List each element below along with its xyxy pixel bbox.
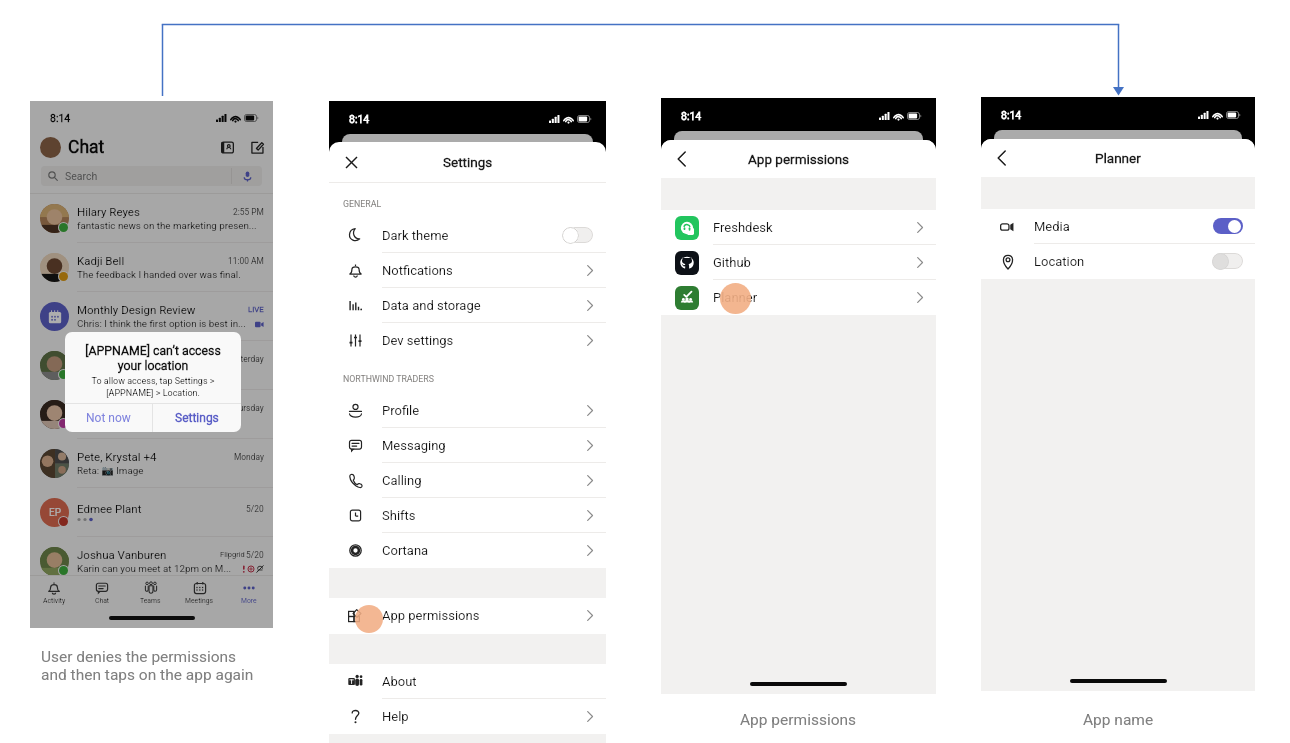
button[interactable]: Kadji Bell (30, 243, 273, 291)
staticText: Joshua Vanburen (77, 548, 167, 561)
button[interactable]: Joshua Vanburen (30, 537, 273, 585)
staticText: [APPNAME] can’t access your location (85, 344, 221, 373)
button[interactable]: Activity (30, 576, 78, 609)
button[interactable]: Notfications (329, 253, 606, 288)
button[interactable]: Calling (329, 463, 606, 498)
button[interactable]: Messaging (329, 428, 606, 463)
staticText: Profile (382, 403, 420, 418)
button[interactable]: Planner (661, 280, 936, 315)
staticText: Dev settings (382, 333, 454, 348)
button[interactable]: Search (41, 166, 262, 186)
staticText: More (241, 597, 257, 605)
button[interactable]: More (224, 576, 273, 609)
button[interactable]: Profile (329, 393, 606, 428)
staticText: GENERAL (343, 199, 382, 209)
staticText: 5/20 (246, 550, 264, 560)
staticText: Gabrielle Renault (77, 401, 164, 414)
button[interactable]: Contacts (221, 141, 234, 154)
staticText: Messaging (382, 438, 446, 453)
staticText: Settings (175, 411, 219, 425)
staticText: Planner (713, 290, 758, 305)
button[interactable]: Media (981, 209, 1255, 244)
button[interactable]: Data and storage (329, 288, 606, 323)
button[interactable]: Back (674, 149, 690, 169)
staticText: NORTHWIND TRADERS (343, 374, 435, 384)
button[interactable]: Settings (153, 404, 241, 432)
staticText: 8:14 (681, 110, 702, 122)
button[interactable]: Chat (78, 576, 126, 609)
button[interactable]: Dev settings (329, 323, 606, 358)
staticText: 5/20 (246, 504, 264, 514)
button[interactable]: New chat (251, 141, 264, 154)
staticText: and then taps on the app again (41, 666, 254, 684)
button[interactable]: Hilary Reyes (30, 194, 273, 242)
staticText: Monthly Design Review (77, 303, 196, 316)
staticText: Chat (68, 137, 105, 158)
staticText: Flipgrid (220, 550, 245, 559)
staticText: App permissions (740, 711, 857, 729)
button[interactable]: Location (981, 244, 1255, 279)
staticText: Data and storage (382, 298, 481, 313)
staticText: 2:55 PM (233, 207, 264, 217)
button[interactable]: Github (661, 245, 936, 280)
staticText: 8:14 (349, 113, 370, 125)
button[interactable]: Teams (126, 576, 175, 609)
staticText: App name (1083, 711, 1154, 729)
button[interactable] (562, 226, 593, 244)
button[interactable]: EP (30, 488, 273, 536)
button[interactable]: Help (329, 699, 606, 734)
button[interactable] (1212, 252, 1243, 270)
staticText: 8:14 (1001, 109, 1022, 121)
staticText: EP (49, 507, 61, 519)
staticText: 11:00 AM (228, 256, 264, 266)
staticText: LIVE (248, 305, 264, 314)
staticText: Thursday (229, 403, 264, 413)
staticText: Chat (95, 597, 110, 605)
staticText: App permissions (382, 608, 480, 623)
button[interactable]: About (329, 664, 606, 699)
button[interactable]: App permissions (329, 598, 606, 634)
staticText: Yesterday (227, 354, 264, 364)
staticText: Cortana (382, 543, 429, 558)
staticText: Shifts (382, 508, 416, 523)
staticText: Freshdesk (713, 220, 773, 235)
staticText: Hilary Reyes (77, 205, 140, 218)
staticText: User denies the permissions (41, 648, 237, 666)
staticText: Search (65, 170, 98, 182)
staticText: Edmee Plant (77, 502, 142, 515)
staticText: Teams (140, 597, 161, 605)
staticText: fantastic news on the marketing presen..… (77, 220, 257, 231)
staticText: Settings (443, 154, 493, 170)
button[interactable]: Gabrielle Renault (30, 390, 273, 438)
staticText: Great, I'll see you there. Plea...se... (77, 416, 225, 427)
staticText: Activity (43, 597, 66, 605)
button[interactable]: Meetings (175, 576, 224, 609)
button[interactable]: Shifts (329, 498, 606, 533)
staticText: Reta: 📷 Image (77, 465, 144, 476)
staticText: Media (1034, 219, 1070, 234)
staticText: To allow access, tap Settings > [APPNAME… (91, 376, 215, 398)
staticText: Not now (86, 411, 131, 425)
staticText: App permissions (748, 151, 850, 167)
button[interactable]: Back (994, 148, 1010, 168)
staticText: Help (382, 709, 409, 724)
staticText: Chanda Patel (77, 352, 146, 365)
staticText: Pete, Krystal +4 (77, 450, 157, 463)
button[interactable]: Pete, Krystal +4 (30, 439, 273, 487)
button[interactable] (1212, 217, 1243, 235)
staticText: Github (713, 255, 751, 270)
staticText: 8:14 (50, 112, 71, 124)
staticText: Karin can you meet at 12pm on M... (77, 563, 232, 574)
button[interactable]: Chanda Patel (30, 341, 273, 389)
button[interactable]: Dark theme (329, 218, 606, 253)
staticText: Kadji Bell (77, 254, 125, 267)
button[interactable]: Monthly Design Review (30, 292, 273, 340)
staticText: Monday (234, 452, 264, 462)
button[interactable]: Freshdesk (661, 210, 936, 245)
staticText: Location (1034, 254, 1085, 269)
button[interactable]: Cortana (329, 533, 606, 568)
staticText: Planner (1095, 150, 1141, 166)
button[interactable]: Not now (65, 404, 152, 432)
staticText: Notfications (382, 263, 453, 278)
button[interactable]: Close (343, 154, 360, 171)
